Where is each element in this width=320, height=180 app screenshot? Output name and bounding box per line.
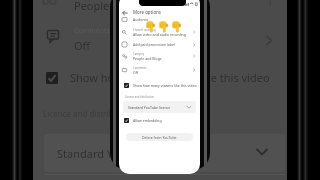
staticText: Category <box>133 52 145 56</box>
staticText: Audience <box>133 17 149 22</box>
staticText: Comments <box>74 26 110 36</box>
staticText: Show how many viewers like this video <box>133 83 197 88</box>
staticText: Licence and distribution <box>43 108 134 119</box>
staticText: Off <box>74 38 91 53</box>
button[interactable]: Back <box>120 8 130 18</box>
staticText: Channel recording <box>133 28 156 32</box>
staticText: More options <box>133 9 161 15</box>
staticText: Licence and distribution <box>125 95 155 99</box>
staticText: Delete from YouTube <box>142 135 177 140</box>
staticText: People and Blogs <box>74 0 164 13</box>
staticText: People and Blogs <box>133 56 162 61</box>
staticText: Show how many viewers like this video <box>70 70 270 85</box>
staticText: Comments <box>133 66 147 70</box>
staticText: Standard YouTube licence <box>128 105 171 110</box>
staticText: Allow embedding <box>133 118 162 123</box>
button[interactable]: Audience <box>122 16 196 23</box>
staticText: Add paid promotion label <box>133 42 175 47</box>
staticText: Off <box>133 70 139 75</box>
button[interactable]: Show how many viewers like this video <box>124 82 199 89</box>
button[interactable]: Channel recording <box>122 27 196 37</box>
button[interactable] <box>123 101 196 113</box>
staticText: Allow video and audio recording <box>133 32 186 37</box>
button[interactable]: Comments <box>122 65 196 75</box>
staticText: Standard YouTube licence <box>57 146 190 161</box>
button[interactable]: Category <box>122 51 196 61</box>
button[interactable]: Allow embedding <box>124 117 199 124</box>
button[interactable]: Add paid promotion label <box>122 41 196 48</box>
button[interactable]: Delete from YouTube <box>126 133 193 141</box>
